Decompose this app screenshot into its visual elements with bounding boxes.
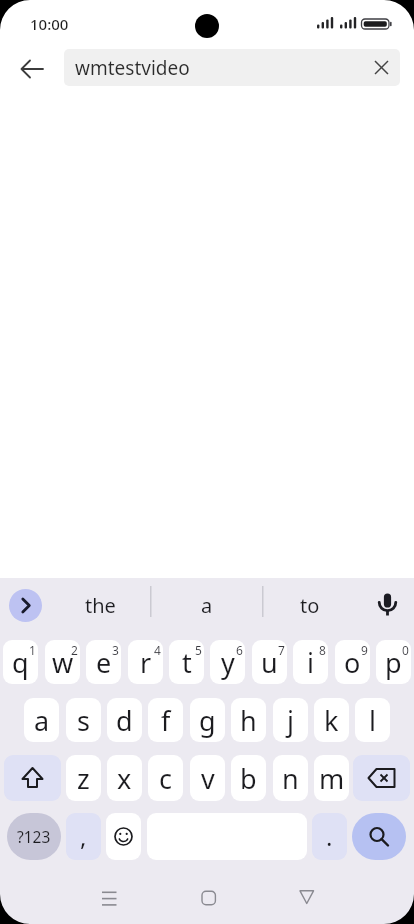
staticText: ,	[80, 820, 87, 853]
staticText: w	[52, 644, 74, 681]
button[interactable]: e	[86, 640, 121, 684]
staticText: e	[96, 644, 112, 681]
staticText: v	[201, 760, 215, 797]
staticText: g	[199, 702, 216, 739]
button[interactable]: f	[148, 698, 183, 742]
button[interactable]: j	[273, 698, 308, 742]
button[interactable]: l	[355, 698, 390, 742]
button[interactable]: s	[66, 698, 101, 742]
button[interactable]	[9, 589, 42, 622]
staticText: j	[287, 702, 294, 739]
staticText: 3	[112, 642, 119, 658]
button[interactable]: .	[312, 813, 347, 860]
button[interactable]: k	[314, 698, 349, 742]
staticText: h	[240, 702, 257, 739]
staticText: o	[344, 644, 361, 681]
staticText: 10:00	[30, 14, 69, 34]
button[interactable]: i	[293, 640, 328, 684]
button[interactable]	[4, 755, 61, 801]
button[interactable]	[89, 878, 129, 918]
button[interactable]: to	[265, 585, 355, 625]
button[interactable]: t	[169, 640, 204, 684]
button[interactable]: u	[252, 640, 287, 684]
staticText: x	[117, 760, 132, 797]
staticText: r	[140, 644, 152, 681]
staticText: y	[221, 644, 235, 681]
button[interactable]: wmtestvideo	[64, 49, 400, 86]
button[interactable]: p	[376, 640, 411, 684]
staticText: m	[319, 760, 345, 797]
button[interactable]: q	[3, 640, 38, 684]
button[interactable]	[106, 813, 141, 860]
staticText: 2	[71, 642, 78, 658]
button[interactable]: o	[335, 640, 370, 684]
button[interactable]: v	[190, 755, 225, 801]
staticText: f	[161, 702, 171, 739]
staticText: s	[77, 702, 90, 739]
button[interactable]: m	[314, 755, 349, 801]
button[interactable]	[188, 878, 228, 918]
staticText: t	[182, 644, 192, 681]
staticText: c	[159, 760, 172, 797]
button[interactable]	[352, 813, 406, 860]
button[interactable]: the	[55, 585, 145, 625]
button[interactable]: w	[45, 640, 80, 684]
staticText: 1	[29, 642, 36, 658]
staticText: a	[201, 592, 213, 619]
button[interactable]	[12, 49, 52, 89]
button[interactable]	[363, 49, 400, 86]
staticText: 5	[195, 642, 202, 658]
button[interactable]: ,	[66, 813, 101, 860]
button[interactable]: a	[24, 698, 59, 742]
staticText: wmtestvideo	[75, 55, 190, 81]
staticText: z	[77, 760, 90, 797]
staticText: 0	[402, 642, 409, 658]
button[interactable]: z	[66, 755, 101, 801]
staticText: ?123	[17, 826, 51, 847]
staticText: a	[34, 702, 50, 739]
button[interactable]: x	[107, 755, 142, 801]
staticText: b	[240, 760, 257, 797]
button[interactable]: c	[148, 755, 183, 801]
button[interactable]: r	[128, 640, 163, 684]
staticText: the	[85, 592, 116, 619]
staticText: n	[282, 760, 299, 797]
button[interactable]: d	[107, 698, 142, 742]
staticText: 8	[319, 642, 326, 658]
staticText: l	[369, 702, 376, 739]
staticText: .	[326, 820, 333, 853]
button[interactable]: b	[231, 755, 266, 801]
button[interactable]: h	[231, 698, 266, 742]
staticText: 6	[236, 642, 243, 658]
staticText: i	[307, 644, 314, 681]
staticText: 4	[154, 642, 161, 658]
staticText: 9	[361, 642, 368, 658]
staticText: 7	[278, 642, 285, 658]
button[interactable]: ?123	[7, 813, 61, 860]
staticText: d	[116, 702, 133, 739]
button[interactable]: n	[273, 755, 308, 801]
button[interactable]	[286, 878, 326, 918]
staticText: k	[324, 702, 339, 739]
staticText: p	[385, 644, 402, 681]
button[interactable]: g	[190, 698, 225, 742]
button[interactable]: y	[210, 640, 245, 684]
button[interactable]: a	[162, 585, 252, 625]
staticText: to	[300, 592, 320, 619]
staticText: u	[261, 644, 278, 681]
button[interactable]	[353, 755, 410, 801]
staticText: q	[12, 644, 29, 681]
